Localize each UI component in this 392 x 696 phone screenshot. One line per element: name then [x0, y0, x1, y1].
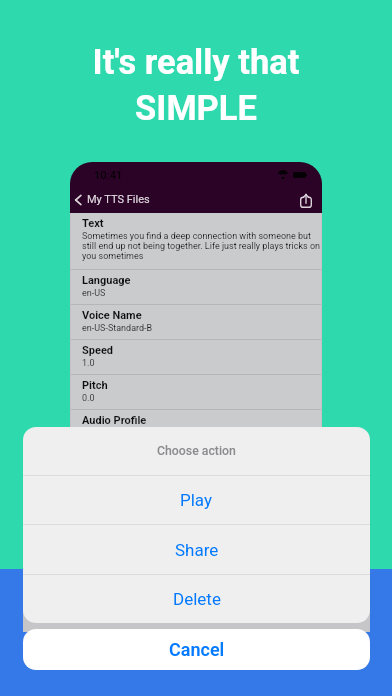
staticText: 10:41: [94, 169, 123, 182]
button[interactable]: Language: [71, 270, 321, 304]
button[interactable]: Audio Profile: [71, 410, 321, 444]
button[interactable]: Share: [294, 189, 318, 213]
button[interactable]: Speed: [71, 340, 321, 374]
staticText: Play: [180, 490, 213, 510]
staticText: Choose action: [157, 444, 236, 458]
staticText: 1.0: [82, 358, 95, 369]
button[interactable]: My TTS Files: [72, 190, 153, 209]
staticText: Sometimes you find a deep connection wit…: [82, 231, 320, 261]
staticText: Share: [175, 540, 219, 560]
staticText: Audio Profile: [82, 414, 147, 427]
staticText: 0.0: [82, 393, 95, 404]
staticText: en-US-Standard-B: [82, 323, 153, 334]
button[interactable]: Pitch: [71, 375, 321, 409]
staticText: Language: [82, 274, 131, 287]
staticText: Voice Name: [82, 309, 142, 322]
button[interactable]: Play: [23, 476, 370, 524]
staticText: Delete: [173, 589, 221, 609]
button[interactable]: Share: [23, 525, 370, 574]
button[interactable]: Text: [71, 213, 321, 269]
button[interactable]: Voice Name: [71, 305, 321, 339]
staticText: Cancel: [169, 639, 225, 660]
staticText: Speed: [82, 344, 114, 357]
button[interactable]: Cancel: [23, 629, 370, 670]
staticText: It's really that SIMPLE: [0, 42, 392, 129]
staticText: Text: [82, 217, 104, 230]
staticText: My TTS Files: [87, 193, 150, 206]
staticText: en-US: [82, 288, 106, 299]
button[interactable]: Delete: [23, 575, 370, 623]
staticText: Pitch: [82, 379, 108, 392]
